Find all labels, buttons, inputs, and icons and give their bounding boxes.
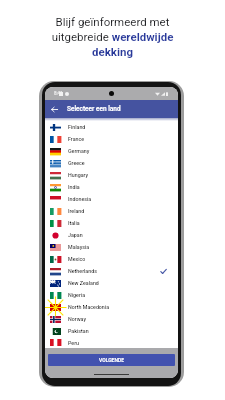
staticText: Netherlands	[68, 268, 97, 274]
staticText: Finland	[68, 124, 86, 130]
staticText: Mexico	[68, 256, 86, 262]
staticText: Nigeria	[68, 292, 86, 298]
staticText: France	[68, 136, 85, 142]
staticText: Ireland	[68, 208, 85, 214]
staticText: Blijf geïnformeerd met uitgebreide werel…	[48, 15, 177, 59]
staticText: Greece	[68, 160, 85, 166]
button[interactable]: Japan	[45, 229, 178, 241]
button[interactable]: Mexico	[45, 253, 178, 265]
button[interactable]: Nigeria	[45, 289, 178, 301]
staticText: Indonesia	[68, 196, 92, 202]
staticText: New Zealand	[68, 280, 99, 286]
button[interactable]: Malaysia	[45, 241, 178, 253]
staticText: 8:41	[54, 91, 63, 96]
button[interactable]: Peru	[45, 337, 178, 348]
staticText: Peru	[68, 340, 80, 346]
button[interactable]: North Macedonia	[45, 301, 178, 313]
staticText: Japan	[68, 232, 83, 238]
button[interactable]: New Zealand	[45, 277, 178, 289]
button[interactable]: Germany	[45, 145, 178, 157]
button[interactable]: Norway	[45, 313, 178, 325]
button[interactable]: VOLGENDE	[48, 354, 175, 366]
staticText: Hungary	[68, 172, 89, 178]
button[interactable]: Indonesia	[45, 193, 178, 205]
staticText: Pakistan	[68, 328, 89, 334]
staticText: India	[68, 184, 80, 190]
button[interactable]: Pakistan	[45, 325, 178, 337]
button[interactable]: Finland	[45, 121, 178, 133]
staticText: North Macedonia	[68, 304, 110, 310]
button[interactable]: Hungary	[45, 169, 178, 181]
staticText: Norway	[68, 316, 87, 322]
staticText: Malaysia	[68, 244, 90, 250]
staticText: Selecteer een land	[67, 105, 121, 113]
button[interactable]: Italia	[45, 217, 178, 229]
button[interactable]: Netherlands	[45, 265, 178, 277]
staticText: Italia	[68, 220, 80, 226]
button[interactable]: Ireland	[45, 205, 178, 217]
staticText: Germany	[68, 148, 90, 154]
button[interactable]: Greece	[45, 157, 178, 169]
button[interactable]: India	[45, 181, 178, 193]
button[interactable]: Back	[45, 100, 63, 118]
button[interactable]: France	[45, 133, 178, 145]
staticText: VOLGENDE	[99, 357, 125, 363]
